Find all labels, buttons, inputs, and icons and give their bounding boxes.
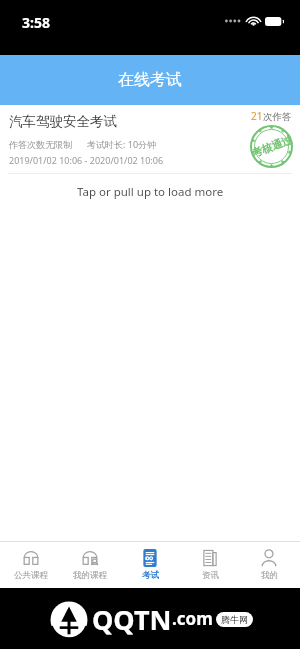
staticText: 21 — [251, 109, 263, 123]
staticText: 在线考试 — [118, 70, 182, 90]
staticText: QQTN — [92, 601, 172, 638]
staticText: 我的课程 — [73, 570, 107, 581]
button[interactable]: Tap or pull up to load more — [0, 174, 300, 210]
button[interactable]: 汽车驾驶安全考试 — [0, 105, 300, 173]
staticText: 考试 — [142, 570, 159, 581]
button[interactable]: 我的 — [240, 542, 298, 588]
button[interactable]: 资讯 — [181, 542, 239, 588]
staticText: 次作答 — [263, 111, 292, 123]
other: 考试 — [141, 549, 159, 567]
other: 资讯 — [201, 549, 219, 567]
staticText: .com — [172, 607, 213, 630]
other: 我的 — [260, 549, 278, 567]
button[interactable]: 公共课程 — [2, 542, 60, 588]
other: 公共课程 — [22, 549, 40, 567]
staticText: 公共课程 — [14, 570, 48, 581]
staticText: 2019/01/02 10:06 - 2020/01/02 10:06 — [9, 154, 164, 166]
staticText: 汽车驾驶安全考试 — [9, 113, 117, 130]
staticText: 3:58 — [22, 13, 50, 32]
button[interactable]: 我的课程 — [61, 542, 119, 588]
staticText: 我的 — [261, 570, 278, 581]
staticText: 腾牛网 — [221, 614, 248, 625]
staticText: 考核通过 — [250, 133, 294, 160]
staticText: 作答次数无限制 — [9, 139, 72, 150]
button[interactable]: 考试 — [121, 542, 179, 588]
staticText: 考试时长: 10分钟 — [87, 138, 157, 150]
staticText: 资讯 — [202, 570, 219, 581]
other: 我的课程 — [81, 549, 99, 567]
staticText: Tap or pull up to load more — [77, 184, 224, 200]
